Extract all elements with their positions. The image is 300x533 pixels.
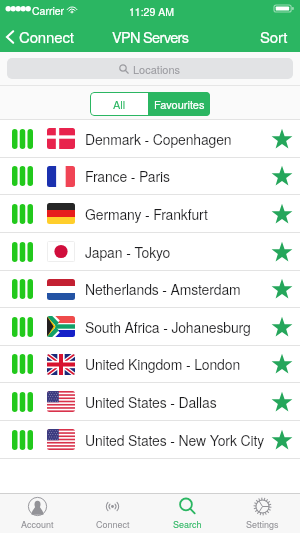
button[interactable]: Favourite <box>272 279 292 299</box>
button[interactable]: Favourite <box>272 242 292 262</box>
button[interactable]: Germany - Frankfurt <box>0 195 300 232</box>
button[interactable]: Favourite <box>272 129 292 149</box>
staticText: Denmark - Copenhagen <box>85 129 272 149</box>
staticText: Settings <box>246 518 279 531</box>
button[interactable]: United Kingdom - London <box>0 346 300 382</box>
button[interactable]: South Africa - Johanesburg <box>0 308 300 345</box>
staticText: United States - New York City <box>85 430 272 450</box>
button[interactable]: Account <box>0 494 75 533</box>
button[interactable]: United States - Dallas <box>0 383 300 420</box>
button[interactable]: United States - New York City <box>0 421 300 458</box>
button[interactable]: France - Paris <box>0 158 300 194</box>
button[interactable]: Favourite <box>272 430 292 450</box>
button[interactable]: Favourite <box>272 354 292 374</box>
button[interactable]: Sort <box>252 21 300 52</box>
button[interactable]: Favourite <box>272 166 292 186</box>
button[interactable]: Settings <box>225 494 300 533</box>
button[interactable]: Favourite <box>272 317 292 337</box>
button[interactable]: Connect <box>0 21 80 52</box>
button[interactable]: Denmark - Copenhagen <box>0 120 300 157</box>
staticText: All <box>113 96 126 112</box>
button[interactable]: Netherlands - Amsterdam <box>0 271 300 307</box>
staticText: Sort <box>260 26 288 47</box>
staticText: Connect <box>19 26 74 47</box>
staticText: Account <box>21 518 54 531</box>
staticText: France - Paris <box>85 166 272 186</box>
staticText: Connect <box>96 518 130 531</box>
staticText: VPN Servers <box>112 26 189 47</box>
button[interactable]: Favourite <box>272 392 292 412</box>
staticText: Carrier <box>32 3 65 18</box>
button[interactable]: Search <box>150 494 225 533</box>
staticText: Search <box>173 518 202 531</box>
staticText: 11:29 AM <box>129 4 174 19</box>
staticText: Locations <box>133 61 181 77</box>
staticText: Netherlands - Amsterdam <box>85 279 272 299</box>
button[interactable]: Locations <box>7 58 293 79</box>
staticText: Germany - Frankfurt <box>85 204 272 224</box>
button[interactable]: All <box>90 92 148 116</box>
staticText: Favourites <box>154 96 205 112</box>
staticText: United Kingdom - London <box>85 354 272 374</box>
staticText: United States - Dallas <box>85 392 272 412</box>
button[interactable]: Favourite <box>272 204 292 224</box>
button[interactable]: Connect <box>75 494 150 533</box>
button[interactable]: Favourites <box>148 92 210 116</box>
staticText: Japan - Tokyo <box>85 242 272 262</box>
button[interactable]: Japan - Tokyo <box>0 233 300 270</box>
staticText: South Africa - Johanesburg <box>85 317 272 337</box>
